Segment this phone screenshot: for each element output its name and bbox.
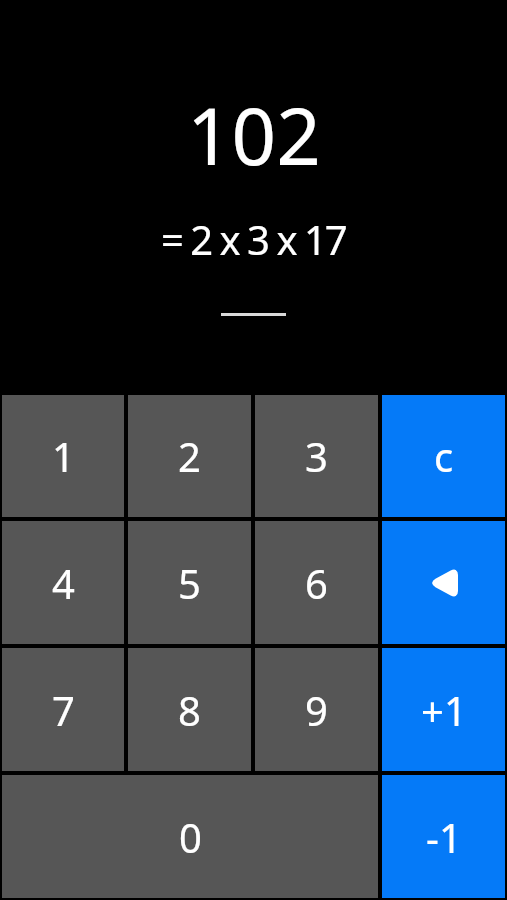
button[interactable]: 0 bbox=[2, 775, 378, 898]
button[interactable]: -1 bbox=[382, 775, 505, 898]
staticText: 1 bbox=[52, 429, 75, 483]
button[interactable]: 8 bbox=[128, 648, 251, 771]
staticText: -1 bbox=[426, 810, 462, 864]
staticText: 102 bbox=[187, 82, 321, 172]
staticText: 5 bbox=[178, 556, 201, 610]
button[interactable]: 3 bbox=[255, 395, 378, 517]
button[interactable]: 6 bbox=[255, 521, 378, 644]
button[interactable]: 5 bbox=[128, 521, 251, 644]
button[interactable]: 7 bbox=[2, 648, 124, 771]
staticText: +1 bbox=[421, 683, 467, 737]
staticText: 7 bbox=[52, 683, 75, 737]
button[interactable]: 4 bbox=[2, 521, 124, 644]
staticText: c bbox=[434, 429, 454, 483]
staticText: 3 bbox=[305, 429, 328, 483]
button[interactable]: 9 bbox=[255, 648, 378, 771]
staticText: 4 bbox=[52, 556, 75, 610]
staticText: 0 bbox=[179, 810, 202, 864]
staticText: 6 bbox=[305, 556, 328, 610]
button[interactable]: +1 bbox=[382, 648, 505, 771]
staticText: 8 bbox=[178, 683, 201, 737]
staticText: 2 bbox=[178, 429, 201, 483]
button[interactable]: 1 bbox=[2, 395, 124, 517]
staticText: = 2 x 3 x 17 bbox=[161, 212, 346, 264]
staticText: 9 bbox=[305, 683, 328, 737]
button[interactable] bbox=[382, 521, 505, 644]
button[interactable]: 2 bbox=[128, 395, 251, 517]
button[interactable]: c bbox=[382, 395, 505, 517]
